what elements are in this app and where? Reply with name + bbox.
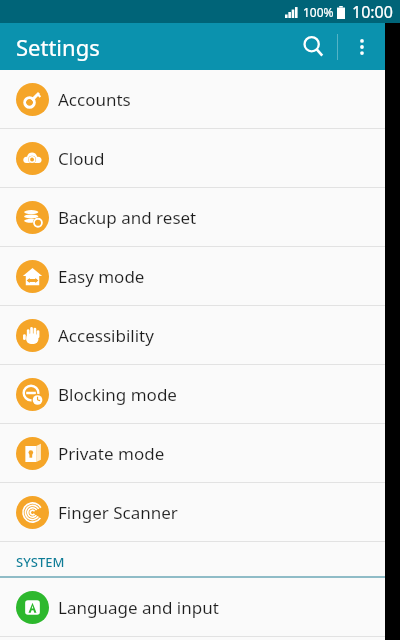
button[interactable]: Cloud (0, 129, 385, 187)
button[interactable]: Accounts (0, 70, 385, 128)
staticText: Accounts (58, 88, 131, 111)
staticText: Cloud (58, 147, 105, 170)
staticText: Backup and reset (58, 206, 197, 229)
staticText: Blocking mode (58, 383, 177, 406)
button[interactable]: Search (290, 23, 337, 70)
button[interactable]: Private mode (0, 424, 385, 482)
button[interactable]: Blocking mode (0, 365, 385, 423)
staticText: Language and input (58, 596, 219, 619)
button[interactable]: More options (338, 23, 385, 70)
button[interactable]: Finger Scanner (0, 483, 385, 541)
button[interactable]: Easy mode (0, 247, 385, 305)
button[interactable]: Accessibility (0, 306, 385, 364)
staticText: Finger Scanner (58, 501, 178, 524)
staticText: Easy mode (58, 265, 145, 288)
button[interactable]: Backup and reset (0, 188, 385, 246)
staticText: Private mode (58, 442, 165, 465)
button[interactable]: Language and input (0, 578, 385, 636)
staticText: Settings (16, 32, 100, 62)
staticText: Accessibility (58, 324, 154, 347)
staticText: 100% (303, 4, 334, 20)
staticText: SYSTEM (16, 553, 65, 571)
staticText: 10:00 (352, 1, 393, 23)
